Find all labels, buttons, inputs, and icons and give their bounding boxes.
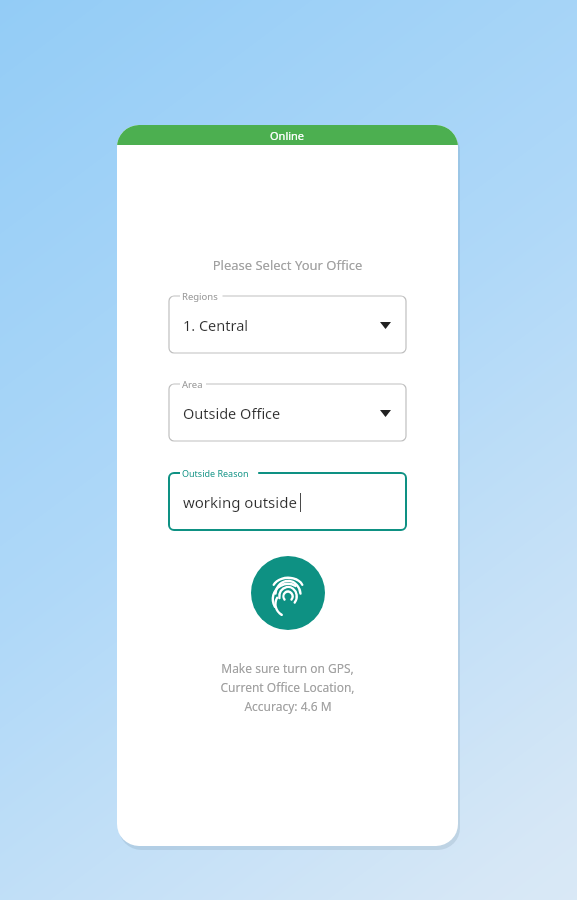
button[interactable]: Scan fingerprint to check in — [251, 556, 325, 630]
staticText: Accuracy: 4.6 M — [244, 698, 332, 714]
staticText: Regions — [182, 290, 218, 303]
button[interactable]: Regions — [169, 296, 406, 353]
button[interactable]: Area — [169, 384, 406, 441]
staticText: Make sure turn on GPS, — [221, 660, 354, 676]
staticText: working outside — [183, 492, 297, 512]
staticText: Online — [270, 128, 305, 143]
staticText: Outside Office — [183, 403, 281, 423]
staticText: 1. Central — [183, 315, 249, 335]
staticText: Area — [182, 378, 203, 391]
button[interactable]: Outside Reason — [169, 473, 406, 530]
staticText: Current Office Location, — [220, 679, 355, 695]
staticText: Please Select Your Office — [117, 256, 458, 274]
staticText: Outside Reason — [182, 467, 249, 479]
